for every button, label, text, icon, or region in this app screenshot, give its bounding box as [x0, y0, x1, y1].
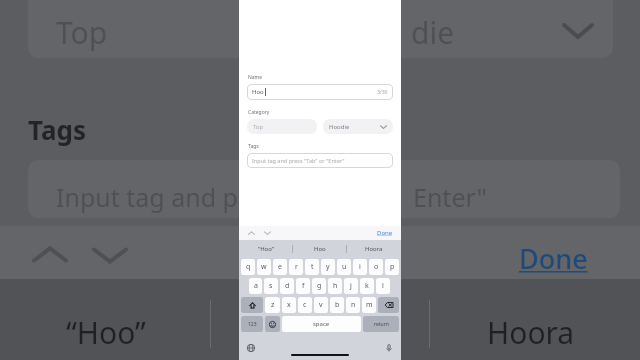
button[interactable]: o	[369, 259, 383, 275]
staticText: h	[333, 281, 338, 291]
staticText: w	[261, 262, 267, 272]
button[interactable]: q	[241, 259, 255, 275]
staticText: Category	[248, 109, 270, 116]
button[interactable]: i	[353, 259, 367, 275]
button[interactable]: Input tag and press "Tab" or "Enter"	[247, 153, 393, 168]
staticText: o	[374, 262, 379, 272]
button[interactable]: j	[344, 278, 358, 294]
staticText: t	[311, 262, 314, 272]
button[interactable]: Emoji	[265, 316, 280, 332]
button[interactable]: l	[376, 278, 390, 294]
staticText: Hoora	[365, 245, 383, 253]
button[interactable]: Dictate	[383, 342, 395, 354]
staticText: “Hoo”	[66, 312, 146, 353]
button[interactable]: u	[337, 259, 351, 275]
staticText: Enter"	[413, 180, 488, 214]
staticText: i	[359, 262, 361, 272]
staticText: Hoo	[252, 88, 264, 96]
staticText: “Hoo”	[258, 245, 274, 253]
staticText: die	[411, 12, 455, 53]
staticText: 3/30	[377, 89, 388, 96]
button[interactable]: Shift	[241, 297, 263, 313]
staticText: Tags	[28, 112, 86, 147]
staticText: j	[350, 281, 352, 291]
staticText: Done	[377, 229, 393, 237]
button[interactable]: p	[385, 259, 399, 275]
button[interactable]: Change keyboard language	[245, 342, 257, 354]
staticText: Name	[248, 74, 263, 81]
button[interactable]: Hoora	[347, 240, 401, 257]
staticText: p	[390, 262, 395, 272]
staticText: Top	[253, 123, 264, 131]
button[interactable]: x	[282, 297, 296, 313]
staticText: Hoo	[314, 245, 326, 253]
staticText: 123	[248, 321, 257, 328]
staticText: Input tag and press "Tab" or "Enter"	[252, 157, 345, 164]
staticText: m	[366, 300, 373, 310]
staticText: l	[382, 281, 384, 291]
button[interactable]: e	[273, 259, 287, 275]
button[interactable]: return	[363, 316, 399, 332]
button[interactable]: b	[330, 297, 344, 313]
button[interactable]: Hoodie	[323, 119, 393, 134]
button[interactable]: 123	[241, 316, 263, 332]
button[interactable]: Previous field	[245, 227, 257, 239]
button[interactable]: r	[289, 259, 303, 275]
staticText: s	[269, 281, 273, 291]
button[interactable]: a	[249, 278, 262, 294]
staticText: g	[317, 281, 322, 291]
staticText: Done	[519, 240, 588, 277]
button[interactable]: k	[360, 278, 374, 294]
button[interactable]: w	[257, 259, 271, 275]
staticText: Input tag and pr	[56, 180, 249, 214]
button[interactable]: space	[282, 316, 361, 332]
button[interactable]: m	[362, 297, 376, 313]
staticText: k	[365, 281, 369, 291]
staticText: f	[302, 281, 305, 291]
staticText: b	[335, 300, 340, 310]
button[interactable]: v	[314, 297, 328, 313]
staticText: Tags	[248, 143, 259, 150]
staticText: z	[271, 300, 275, 310]
button[interactable]: h	[328, 278, 342, 294]
staticText: e	[278, 262, 282, 272]
staticText: return	[374, 321, 389, 328]
button[interactable]: s	[264, 278, 278, 294]
button[interactable]: Hoo	[293, 240, 347, 257]
staticText: x	[287, 300, 291, 310]
staticText: r	[295, 262, 298, 272]
button[interactable]: c	[298, 297, 312, 313]
button[interactable]: Top	[247, 119, 317, 134]
button[interactable]: n	[346, 297, 360, 313]
button[interactable]: z	[265, 297, 280, 313]
staticText: c	[303, 300, 307, 310]
staticText: v	[319, 300, 323, 310]
button[interactable]: t	[305, 259, 319, 275]
button[interactable]: Hoo	[247, 84, 393, 100]
staticText: y	[326, 262, 330, 272]
button[interactable]: Next field	[261, 227, 273, 239]
staticText: d	[285, 281, 290, 291]
button[interactable]: Done	[375, 228, 395, 238]
button[interactable]: “Hoo”	[239, 240, 293, 257]
button[interactable]: d	[280, 278, 294, 294]
button[interactable]: f	[296, 278, 310, 294]
button[interactable]: Backspace	[378, 297, 399, 313]
staticText: space	[313, 320, 330, 328]
staticText: q	[246, 262, 251, 272]
staticText: u	[342, 262, 347, 272]
staticText: Hoodie	[329, 123, 350, 131]
staticText: n	[351, 300, 356, 310]
staticText: Hoora	[487, 312, 575, 353]
staticText: Top	[56, 12, 108, 53]
button[interactable]: g	[312, 278, 326, 294]
staticText: a	[254, 281, 258, 291]
button[interactable]: y	[321, 259, 335, 275]
